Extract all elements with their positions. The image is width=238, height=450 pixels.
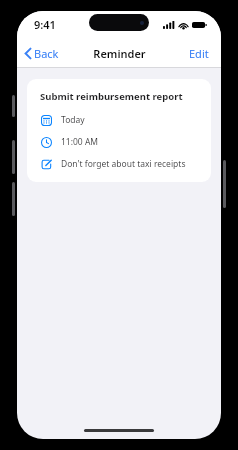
button[interactable]: Edit <box>179 41 221 66</box>
staticText: Don't forget about taxi receipts <box>61 158 186 170</box>
staticText: Reminder <box>93 46 146 61</box>
button[interactable]: Submit reimbursement report <box>27 79 211 182</box>
staticText: 9:41 <box>34 17 56 32</box>
staticText: Submit reimbursement report <box>40 90 183 103</box>
staticText: 11:00 AM <box>61 136 99 148</box>
staticText: Edit <box>189 46 209 61</box>
button[interactable]: Back <box>17 42 67 65</box>
staticText: Back <box>34 46 59 61</box>
staticText: Today <box>61 114 85 126</box>
